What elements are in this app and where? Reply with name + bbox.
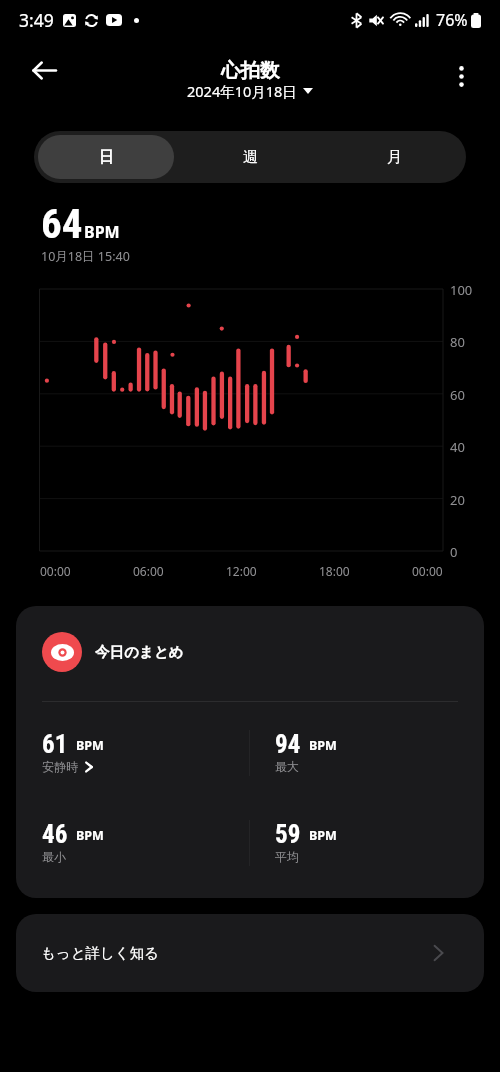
staticText: 76% bbox=[436, 9, 468, 31]
staticText: 2024年10月18日 bbox=[187, 81, 297, 101]
staticText: 59 bbox=[275, 820, 301, 849]
staticText: 月 bbox=[387, 148, 402, 167]
staticText: 平均 bbox=[275, 849, 299, 864]
staticText: BPM bbox=[76, 737, 104, 754]
staticText: 10月18日 15:40 bbox=[41, 248, 130, 265]
staticText: 3:49 bbox=[19, 8, 54, 32]
button[interactable]: Back bbox=[22, 48, 66, 92]
staticText: BPM bbox=[84, 221, 120, 243]
staticText: 100 bbox=[450, 281, 473, 299]
staticText: 心拍数 bbox=[221, 58, 280, 83]
button[interactable]: 今日のまとめ bbox=[16, 606, 484, 898]
staticText: 最大 bbox=[275, 759, 299, 774]
button[interactable]: もっと詳しく知る bbox=[16, 914, 484, 992]
staticText: 安静時 bbox=[42, 759, 78, 774]
staticText: もっと詳しく知る bbox=[41, 944, 433, 962]
button[interactable]: More options bbox=[439, 54, 483, 98]
staticText: 80 bbox=[450, 333, 465, 351]
staticText: 40 bbox=[450, 438, 465, 456]
staticText: 18:00 bbox=[319, 563, 350, 579]
staticText: 今日のまとめ bbox=[95, 643, 184, 661]
staticText: 最小 bbox=[42, 849, 66, 864]
staticText: 0 bbox=[450, 543, 458, 561]
button[interactable]: 週 bbox=[182, 135, 318, 179]
button[interactable]: 2024年10月18日 bbox=[185, 80, 315, 102]
staticText: 20 bbox=[450, 491, 465, 509]
staticText: 61 bbox=[42, 730, 68, 759]
staticText: 00:00 bbox=[40, 563, 71, 579]
staticText: 60 bbox=[450, 386, 465, 404]
staticText: BPM bbox=[309, 737, 337, 754]
staticText: 64 bbox=[41, 200, 83, 248]
staticText: 12:00 bbox=[226, 563, 257, 579]
staticText: 94 bbox=[275, 730, 301, 759]
button[interactable]: 日 bbox=[38, 135, 174, 179]
staticText: 00:00 bbox=[412, 563, 443, 579]
staticText: 週 bbox=[243, 148, 258, 167]
button[interactable]: 月 bbox=[326, 135, 462, 179]
staticText: 日 bbox=[99, 148, 114, 167]
staticText: 06:00 bbox=[133, 563, 164, 579]
staticText: 46 bbox=[42, 820, 68, 849]
staticText: BPM bbox=[309, 827, 337, 844]
staticText: BPM bbox=[76, 827, 104, 844]
